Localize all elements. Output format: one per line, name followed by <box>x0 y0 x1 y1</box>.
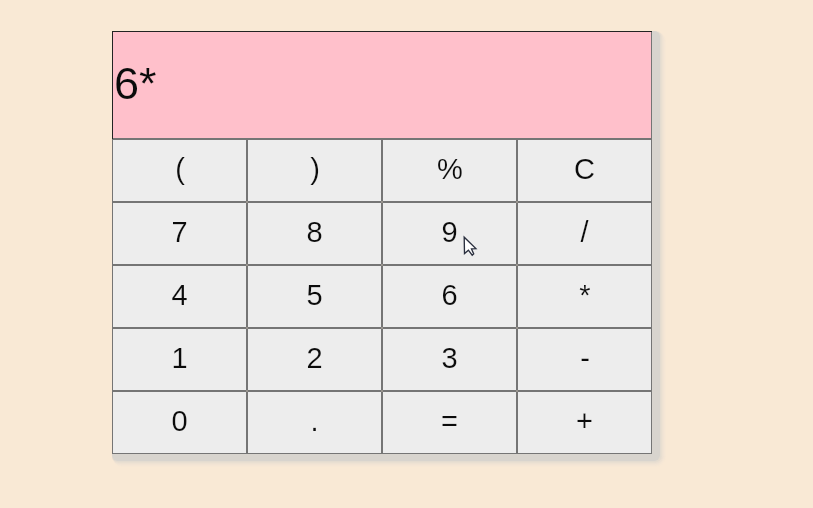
staticText: = <box>441 405 458 437</box>
button[interactable]: % <box>382 139 517 202</box>
button[interactable]: 1 <box>112 328 247 391</box>
button[interactable]: = <box>382 391 517 454</box>
button[interactable]: * <box>517 265 652 328</box>
button[interactable]: 2 <box>247 328 382 391</box>
staticText: ) <box>310 153 320 185</box>
button[interactable]: 5 <box>247 265 382 328</box>
staticText: 2 <box>306 342 323 374</box>
staticText: 1 <box>171 342 188 374</box>
button[interactable]: / <box>517 202 652 265</box>
staticText: / <box>580 216 589 248</box>
button[interactable]: ( <box>112 139 247 202</box>
staticText: 0 <box>171 405 188 437</box>
staticText: 8 <box>306 216 323 248</box>
button[interactable]: 4 <box>112 265 247 328</box>
button[interactable]: 6* <box>112 31 652 139</box>
button[interactable]: 9 <box>382 202 517 265</box>
staticText: 6* <box>114 58 157 108</box>
staticText: * <box>579 279 591 311</box>
button[interactable]: 6 <box>382 265 517 328</box>
button[interactable]: ) <box>247 139 382 202</box>
button[interactable]: . <box>247 391 382 454</box>
button[interactable]: 3 <box>382 328 517 391</box>
staticText: - <box>580 342 590 374</box>
button[interactable]: 0 <box>112 391 247 454</box>
button[interactable]: + <box>517 391 652 454</box>
button[interactable]: 7 <box>112 202 247 265</box>
staticText: + <box>576 405 593 437</box>
staticText: 4 <box>171 279 188 311</box>
staticText: 5 <box>306 279 323 311</box>
staticText: 6 <box>441 279 458 311</box>
staticText: 9 <box>441 216 458 248</box>
staticText: . <box>310 405 319 437</box>
staticText: % <box>437 153 463 185</box>
button[interactable]: C <box>517 139 652 202</box>
staticText: 7 <box>171 216 188 248</box>
other: Pointer <box>462 235 482 255</box>
button[interactable]: - <box>517 328 652 391</box>
staticText: C <box>574 153 595 185</box>
staticText: ( <box>175 153 185 185</box>
staticText: 3 <box>441 342 458 374</box>
button[interactable]: 8 <box>247 202 382 265</box>
